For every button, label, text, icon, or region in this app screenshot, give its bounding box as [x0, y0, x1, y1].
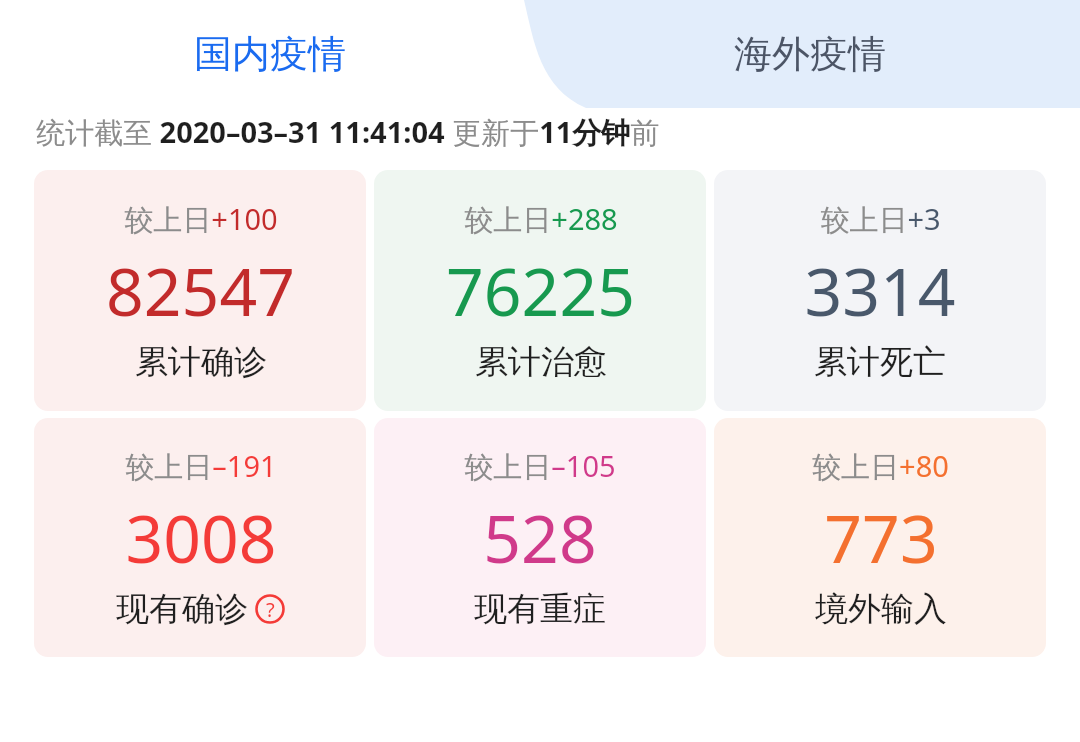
staticText: 76225 — [446, 245, 635, 335]
button[interactable]: 较上日–191 — [34, 418, 366, 657]
staticText: 海外疫情 — [734, 30, 886, 78]
staticText: 境外输入 — [815, 588, 947, 630]
staticText: 累计确诊 — [135, 341, 267, 383]
staticText: 统计截至 2020–03–31 11:41:04 更新于11分钟前 — [36, 112, 660, 152]
staticText: 3314 — [804, 245, 956, 335]
staticText: 较上日+100 — [124, 199, 278, 239]
staticText: 现有确诊 — [116, 588, 248, 630]
staticText: 82547 — [106, 245, 295, 335]
staticText: 较上日+80 — [812, 446, 949, 486]
staticText: 3008 — [125, 492, 277, 582]
staticText: 较上日+288 — [464, 199, 618, 239]
button[interactable]: 较上日+100 — [34, 170, 366, 411]
staticText: 较上日+3 — [820, 199, 941, 239]
staticText: 较上日–105 — [464, 446, 616, 486]
button[interactable]: 海外疫情 — [540, 0, 1080, 108]
staticText: 国内疫情 — [194, 30, 346, 78]
staticText: 528 — [483, 492, 597, 582]
button[interactable]: 国内疫情 — [0, 0, 540, 108]
staticText: 累计死亡 — [814, 341, 946, 383]
button[interactable]: 较上日–105 — [374, 418, 706, 657]
staticText: 较上日–191 — [125, 446, 277, 486]
button[interactable]: 说明 — [255, 594, 285, 624]
staticText: 773 — [824, 492, 938, 582]
button[interactable]: 较上日+288 — [374, 170, 706, 411]
staticText: ? — [266, 596, 275, 623]
staticText: 累计治愈 — [475, 341, 607, 383]
button[interactable]: 较上日+80 — [714, 418, 1046, 657]
staticText: 现有重症 — [474, 588, 606, 630]
button[interactable]: 较上日+3 — [714, 170, 1046, 411]
